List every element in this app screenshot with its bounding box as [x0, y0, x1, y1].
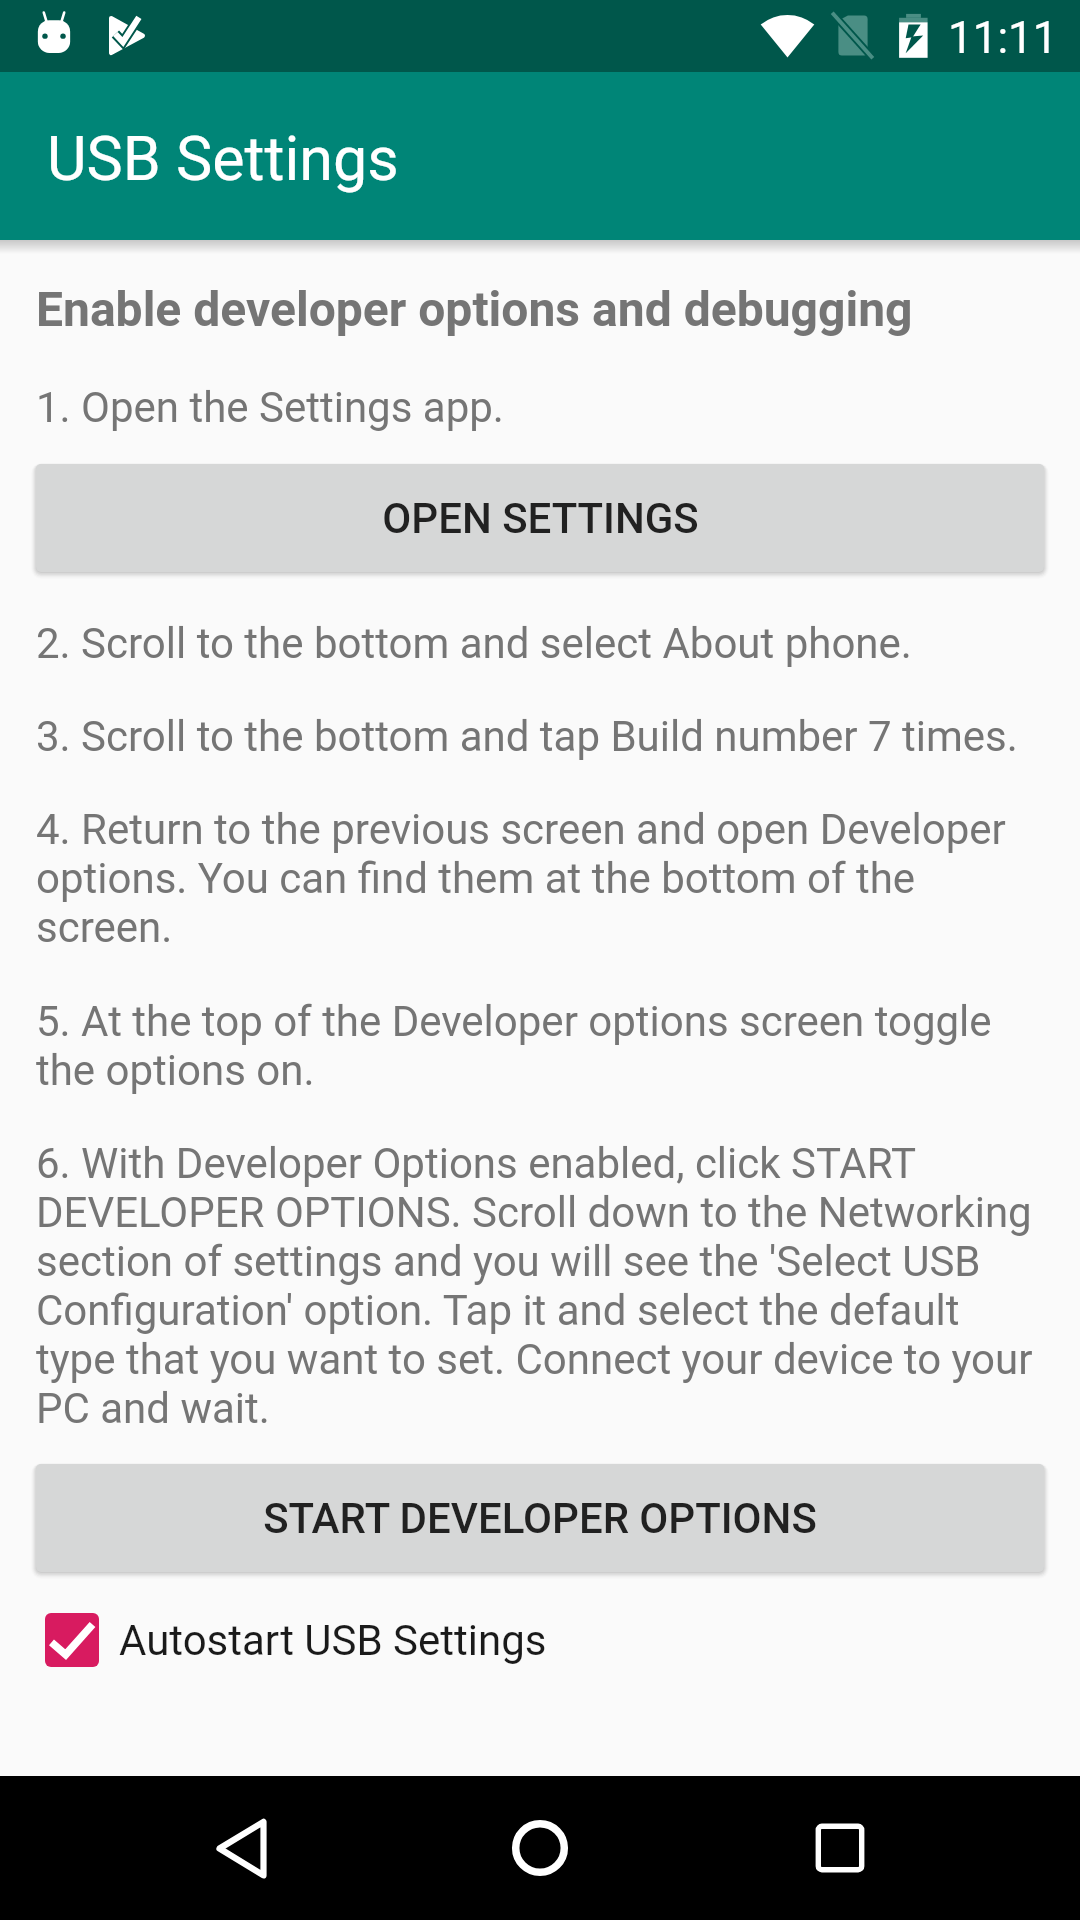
staticText: 4. Return to the previous screen and ope… — [36, 805, 1044, 952]
other: Play Store — [108, 14, 146, 56]
other: No SIM card — [831, 13, 875, 60]
staticText: 2. Scroll to the bottom and select About… — [36, 619, 912, 668]
button[interactable]: OPEN SETTINGS — [36, 464, 1044, 572]
staticText: 11:11 — [948, 12, 1058, 64]
staticText: START DEVELOPER OPTIONS — [263, 1494, 817, 1543]
staticText: 5. At the top of the Developer options s… — [36, 997, 1044, 1095]
button[interactable]: Home — [474, 1782, 606, 1914]
button[interactable]: Recent apps — [774, 1782, 906, 1914]
staticText: 1. Open the Settings app. — [36, 383, 504, 432]
other: Android — [37, 11, 71, 54]
other: Autostart USB Settings checkbox — [45, 1613, 99, 1667]
other: Battery charging — [897, 12, 930, 60]
button[interactable]: Back — [174, 1782, 306, 1914]
other: Wi-Fi — [757, 13, 818, 58]
button[interactable]: Autostart USB Settings checkbox — [45, 1613, 547, 1667]
button[interactable]: START DEVELOPER OPTIONS — [36, 1464, 1044, 1572]
staticText: 3. Scroll to the bottom and tap Build nu… — [36, 712, 1018, 761]
staticText: OPEN SETTINGS — [382, 494, 699, 543]
staticText: Autostart USB Settings — [119, 1616, 547, 1665]
staticText: USB Settings — [47, 123, 399, 194]
staticText: 6. With Developer Options enabled, click… — [36, 1139, 1044, 1433]
staticText: Enable developer options and debugging — [36, 282, 913, 338]
